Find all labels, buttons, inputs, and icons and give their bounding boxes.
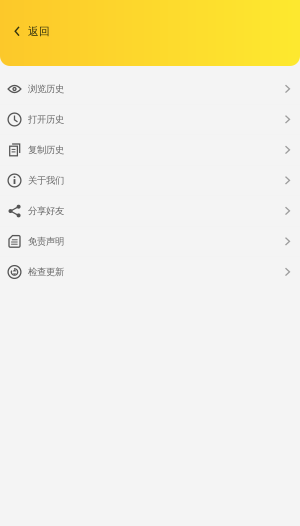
button[interactable]: 复制历史 [0,135,300,165]
button[interactable]: 免责声明 [0,226,300,256]
button[interactable]: 关于我们 [0,165,300,195]
staticText: 复制历史 [28,144,64,156]
staticText: 免责声明 [28,236,64,247]
button[interactable]: 打开历史 [0,104,300,134]
staticText: 打开历史 [28,114,64,125]
staticText: 关于我们 [28,175,64,186]
staticText: 分享好友 [28,205,64,217]
staticText: 检查更新 [28,266,64,278]
button[interactable]: 返回 [0,0,60,46]
button[interactable]: 浏览历史 [0,74,300,104]
button[interactable]: 检查更新 [0,257,300,287]
staticText: 返回 [28,25,50,38]
staticText: 浏览历史 [28,83,64,95]
button[interactable]: 分享好友 [0,196,300,226]
